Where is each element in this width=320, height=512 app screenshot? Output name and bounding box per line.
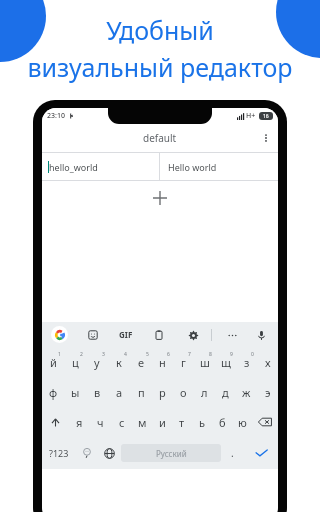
button[interactable]: hello_world	[42, 153, 159, 180]
staticText: а	[116, 385, 123, 400]
button[interactable]: г	[173, 347, 194, 377]
staticText: я	[76, 415, 83, 430]
button[interactable]: й	[42, 347, 64, 377]
staticText: .	[231, 446, 234, 460]
staticText: н	[159, 355, 166, 370]
staticText: к	[116, 355, 122, 370]
staticText: 3	[102, 351, 105, 358]
button[interactable]: More options	[254, 126, 278, 150]
button[interactable]: GIF	[119, 329, 133, 340]
button[interactable]: с	[111, 407, 132, 437]
button[interactable]: х	[257, 347, 278, 377]
staticText: х	[265, 355, 271, 370]
button[interactable]: к	[108, 347, 130, 377]
button[interactable]: м	[132, 407, 152, 437]
button[interactable]: Google search	[51, 326, 68, 343]
button[interactable]: Keyboard settings	[185, 327, 201, 343]
staticText: 4	[124, 351, 127, 358]
button[interactable]: Clipboard	[151, 327, 167, 343]
button[interactable]: л	[194, 377, 215, 407]
staticText: ю	[238, 415, 247, 430]
staticText: ц	[72, 355, 79, 370]
staticText: ш	[200, 355, 210, 370]
button[interactable]: Voice input	[253, 327, 269, 343]
button[interactable]: а	[108, 377, 130, 407]
button[interactable]: б	[212, 407, 232, 437]
button[interactable]: т	[172, 407, 192, 437]
button[interactable]: Backspace	[252, 407, 278, 437]
button[interactable]: е	[130, 347, 152, 377]
staticText: ч	[97, 415, 104, 430]
staticText: 16	[263, 113, 269, 120]
staticText: 8	[209, 351, 212, 358]
button[interactable]: ?123	[42, 437, 75, 469]
button[interactable]: Emoji	[75, 437, 98, 469]
button[interactable]: Add row	[147, 185, 173, 211]
staticText: 0	[251, 351, 254, 358]
staticText: р	[159, 385, 166, 400]
staticText: Удобный	[106, 13, 214, 47]
button[interactable]: щ	[215, 347, 236, 377]
staticText: з	[244, 355, 250, 370]
button[interactable]: Stickers	[85, 327, 101, 343]
staticText: 5	[146, 351, 149, 358]
staticText: д	[222, 385, 229, 400]
staticText: ф	[49, 385, 58, 400]
staticText: л	[201, 385, 208, 400]
button[interactable]: з	[236, 347, 257, 377]
staticText: 7	[188, 351, 191, 358]
button[interactable]: я	[69, 407, 90, 437]
button[interactable]: .	[221, 437, 244, 469]
button[interactable]: н	[152, 347, 173, 377]
button[interactable]: ч	[90, 407, 111, 437]
staticText: о	[180, 385, 187, 400]
staticText: 6	[167, 351, 170, 358]
staticText: п	[138, 385, 145, 400]
staticText: default	[143, 131, 177, 145]
staticText: в	[94, 385, 101, 400]
button[interactable]: ж	[236, 377, 257, 407]
staticText: ?123	[49, 447, 69, 459]
button[interactable]: у	[86, 347, 108, 377]
button[interactable]: в	[86, 377, 108, 407]
button[interactable]: Done	[244, 437, 278, 469]
button[interactable]: Русский	[121, 444, 221, 462]
staticText: т	[179, 415, 185, 430]
staticText: э	[265, 385, 271, 400]
button[interactable]: о	[173, 377, 194, 407]
staticText: визуальный редактор	[27, 50, 293, 84]
staticText: hello_world	[49, 161, 98, 173]
button[interactable]: ы	[64, 377, 86, 407]
staticText: 9	[230, 351, 233, 358]
staticText: щ	[221, 355, 231, 370]
staticText: ы	[71, 385, 80, 400]
staticText: й	[50, 355, 57, 370]
staticText: у	[94, 355, 100, 370]
button[interactable]: ф	[42, 377, 64, 407]
staticText: б	[219, 415, 226, 430]
button[interactable]: Change language	[98, 437, 121, 469]
button[interactable]: More	[224, 327, 240, 343]
button[interactable]: р	[152, 377, 173, 407]
staticText: Hello world	[168, 161, 217, 173]
button[interactable]: Shift	[42, 407, 69, 437]
staticText: е	[138, 355, 145, 370]
staticText: H+	[246, 111, 256, 121]
button[interactable]: ш	[194, 347, 215, 377]
staticText: 2	[80, 351, 83, 358]
staticText: ж	[242, 385, 251, 400]
button[interactable]: э	[257, 377, 278, 407]
button[interactable]: ц	[64, 347, 86, 377]
button[interactable]: и	[152, 407, 172, 437]
button[interactable]: ь	[192, 407, 212, 437]
staticText: GIF	[119, 329, 133, 340]
staticText: 23:10	[47, 111, 65, 121]
staticText: с	[119, 415, 125, 430]
button[interactable]: Hello world	[160, 153, 278, 180]
staticText: 1	[58, 351, 61, 358]
button[interactable]: ю	[232, 407, 252, 437]
button[interactable]: п	[130, 377, 152, 407]
staticText: м	[138, 415, 147, 430]
button[interactable]: д	[215, 377, 236, 407]
staticText: Русский	[156, 448, 187, 459]
